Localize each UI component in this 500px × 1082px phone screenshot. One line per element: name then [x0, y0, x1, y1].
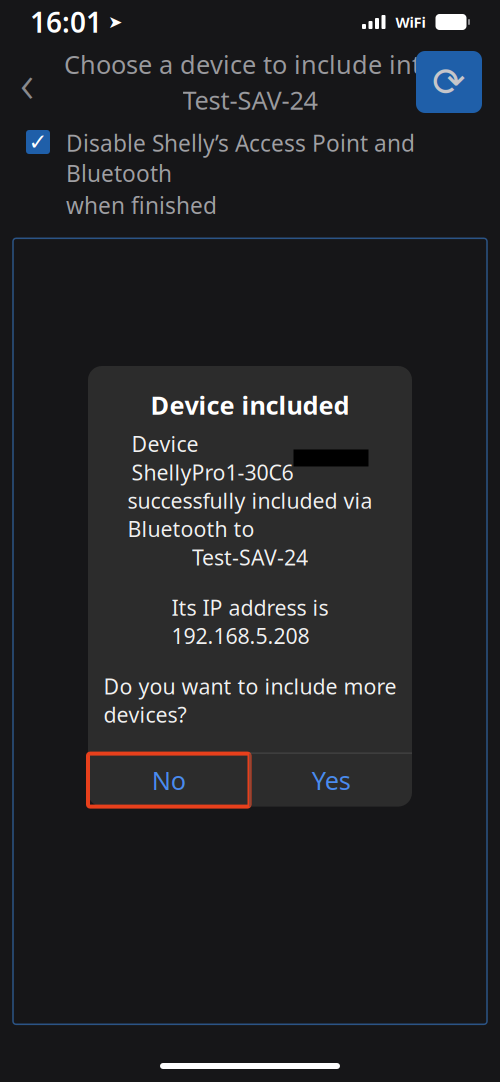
staticText: ⟳: [432, 59, 466, 105]
staticText: Test-SAV-24: [182, 83, 317, 117]
staticText: Disable Shelly’s Access Point and Blueto…: [66, 128, 415, 188]
button[interactable]: Yes: [250, 754, 412, 807]
staticText: ➤: [108, 12, 123, 32]
button[interactable]: Refresh: [416, 51, 482, 113]
staticText: Its IP address is 192.168.5.208: [171, 593, 328, 650]
staticText: Do you want to include more devices?: [103, 672, 396, 729]
staticText: Device included: [150, 388, 349, 422]
staticText: when finished: [66, 190, 217, 220]
button[interactable]: Back: [0, 52, 54, 112]
staticText: ‹: [20, 47, 34, 117]
staticText: Device ShellyPro1-30C6: [131, 430, 293, 486]
staticText: successfully included via Bluetooth to: [127, 486, 372, 543]
button[interactable]: No: [88, 754, 249, 807]
staticText: ✓: [28, 129, 47, 155]
staticText: No: [152, 763, 186, 797]
staticText: Choose a device to include into: [64, 47, 436, 81]
staticText: 16:01: [30, 3, 102, 41]
button[interactable]: ✓: [0, 120, 500, 238]
staticText: Test-SAV-24: [192, 543, 308, 571]
staticText: Yes: [312, 763, 351, 797]
staticText: WiFi: [395, 12, 425, 32]
